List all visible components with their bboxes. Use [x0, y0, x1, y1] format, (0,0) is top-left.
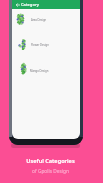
staticText: Flower Design: [31, 43, 49, 47]
staticText: Area Design: [31, 18, 47, 22]
staticText: Mango Design: [30, 69, 49, 73]
button[interactable]: Mango Design: [12, 60, 80, 81]
button[interactable]: Flower Design: [12, 34, 80, 55]
staticText: Category: [21, 2, 39, 8]
staticText: of Gpolis Design: [0, 168, 102, 175]
staticText: Useful Categories: [0, 157, 102, 165]
button[interactable]: Area Design: [12, 9, 80, 30]
button[interactable]: Back: [14, 1, 21, 8]
